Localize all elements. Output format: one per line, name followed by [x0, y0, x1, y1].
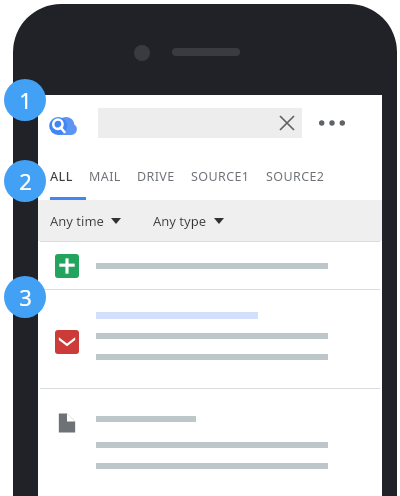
staticText: Any type	[153, 212, 207, 230]
button[interactable]: MAIL	[89, 152, 121, 200]
button[interactable]	[40, 290, 380, 388]
staticText: SOURCE1	[191, 168, 250, 185]
button[interactable]: Any type	[153, 200, 224, 241]
staticText: MAIL	[89, 168, 121, 185]
button[interactable]: More options	[310, 103, 354, 143]
button[interactable]: SOURCE2	[266, 152, 325, 200]
button[interactable]: SOURCE1	[191, 152, 250, 200]
button[interactable]: Any time	[50, 200, 121, 241]
button[interactable]	[98, 108, 302, 138]
staticText: Any time	[50, 212, 104, 230]
staticText: SOURCE2	[266, 168, 325, 185]
staticText: ALL	[50, 168, 73, 185]
button[interactable]	[40, 242, 380, 289]
button[interactable]: DRIVE	[137, 152, 175, 200]
staticText: 1	[19, 85, 32, 115]
staticText: DRIVE	[137, 168, 175, 185]
button[interactable]: ALL	[50, 152, 73, 200]
button[interactable]: 1	[4, 79, 46, 121]
button[interactable]: Cloud Search	[48, 111, 78, 141]
button[interactable]: 3	[4, 276, 46, 318]
staticText: 2	[19, 166, 32, 196]
button[interactable]: 2	[4, 160, 46, 202]
button[interactable]	[40, 389, 380, 487]
staticText: 3	[19, 282, 32, 312]
